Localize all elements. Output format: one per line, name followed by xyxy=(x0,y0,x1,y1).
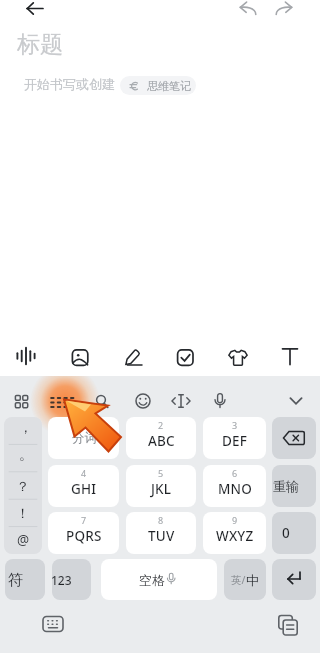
staticText: JKL xyxy=(151,480,172,498)
button[interactable] xyxy=(127,385,159,417)
button[interactable]: 8 xyxy=(126,512,196,554)
staticText: DEF xyxy=(222,432,248,450)
staticText: PQRS xyxy=(66,527,102,545)
staticText: 4 xyxy=(81,467,87,479)
staticText: 标题 xyxy=(17,30,63,59)
button[interactable] xyxy=(272,0,296,20)
button[interactable]: 符 xyxy=(5,559,45,600)
staticText: 3 xyxy=(232,419,238,431)
staticText: 8 xyxy=(158,514,164,526)
button[interactable] xyxy=(236,0,260,20)
staticText: 中 xyxy=(246,572,259,588)
button[interactable]: 分词 xyxy=(48,417,119,459)
button[interactable] xyxy=(272,559,316,600)
button[interactable]: 思维笔记 xyxy=(120,76,196,95)
button[interactable]: 英/ xyxy=(224,559,266,600)
button[interactable] xyxy=(272,417,316,459)
staticText: @ xyxy=(17,531,30,549)
button[interactable] xyxy=(18,0,52,20)
button[interactable] xyxy=(85,385,117,417)
button[interactable]: 0 xyxy=(272,512,316,554)
staticText: GHI xyxy=(71,480,97,498)
button[interactable]: 123 xyxy=(52,559,91,600)
staticText: ABC xyxy=(148,432,175,450)
staticText: ， xyxy=(19,419,33,436)
button[interactable]: 5 xyxy=(126,465,196,507)
staticText: ？ xyxy=(16,478,30,495)
button[interactable]: 重输 xyxy=(272,465,316,507)
button[interactable] xyxy=(204,385,236,417)
button[interactable]: 6 xyxy=(203,465,266,507)
button[interactable] xyxy=(8,338,44,374)
button[interactable] xyxy=(280,385,312,417)
staticText: 思维笔记 xyxy=(147,79,191,93)
button[interactable] xyxy=(272,610,300,638)
button[interactable]: 2 xyxy=(126,417,196,459)
button[interactable] xyxy=(217,338,253,374)
button[interactable]: 9 xyxy=(203,512,266,554)
staticText: ！ xyxy=(16,505,30,522)
button[interactable] xyxy=(60,338,96,374)
button[interactable] xyxy=(40,610,68,638)
staticText: 9 xyxy=(232,514,238,526)
staticText: 0 xyxy=(282,524,290,542)
staticText: 符 xyxy=(8,571,23,590)
button[interactable]: 空格 xyxy=(101,559,217,600)
button[interactable] xyxy=(4,417,42,554)
staticText: 7 xyxy=(81,514,87,526)
button[interactable]: 7 xyxy=(48,512,119,554)
staticText: MNO xyxy=(218,480,253,498)
staticText: 2 xyxy=(158,419,164,431)
button[interactable] xyxy=(113,338,149,374)
button[interactable]: 3 xyxy=(203,417,266,459)
staticText: 。 xyxy=(19,446,33,463)
staticText: 英/ xyxy=(231,573,246,587)
staticText: 分词 xyxy=(72,430,97,446)
button[interactable] xyxy=(46,385,78,417)
staticText: WXYZ xyxy=(216,527,254,545)
staticText: 6 xyxy=(232,467,238,479)
staticText: 重输 xyxy=(273,478,299,494)
staticText: 123 xyxy=(52,572,72,588)
staticText: 空格 xyxy=(139,572,165,588)
button[interactable]: 4 xyxy=(48,465,119,507)
staticText: 开始书写或创建 xyxy=(24,76,115,92)
button[interactable] xyxy=(6,385,38,417)
staticText: TUV xyxy=(148,527,175,545)
staticText: 5 xyxy=(158,467,164,479)
button[interactable] xyxy=(165,338,201,374)
button[interactable] xyxy=(165,385,197,417)
button[interactable] xyxy=(270,338,306,374)
